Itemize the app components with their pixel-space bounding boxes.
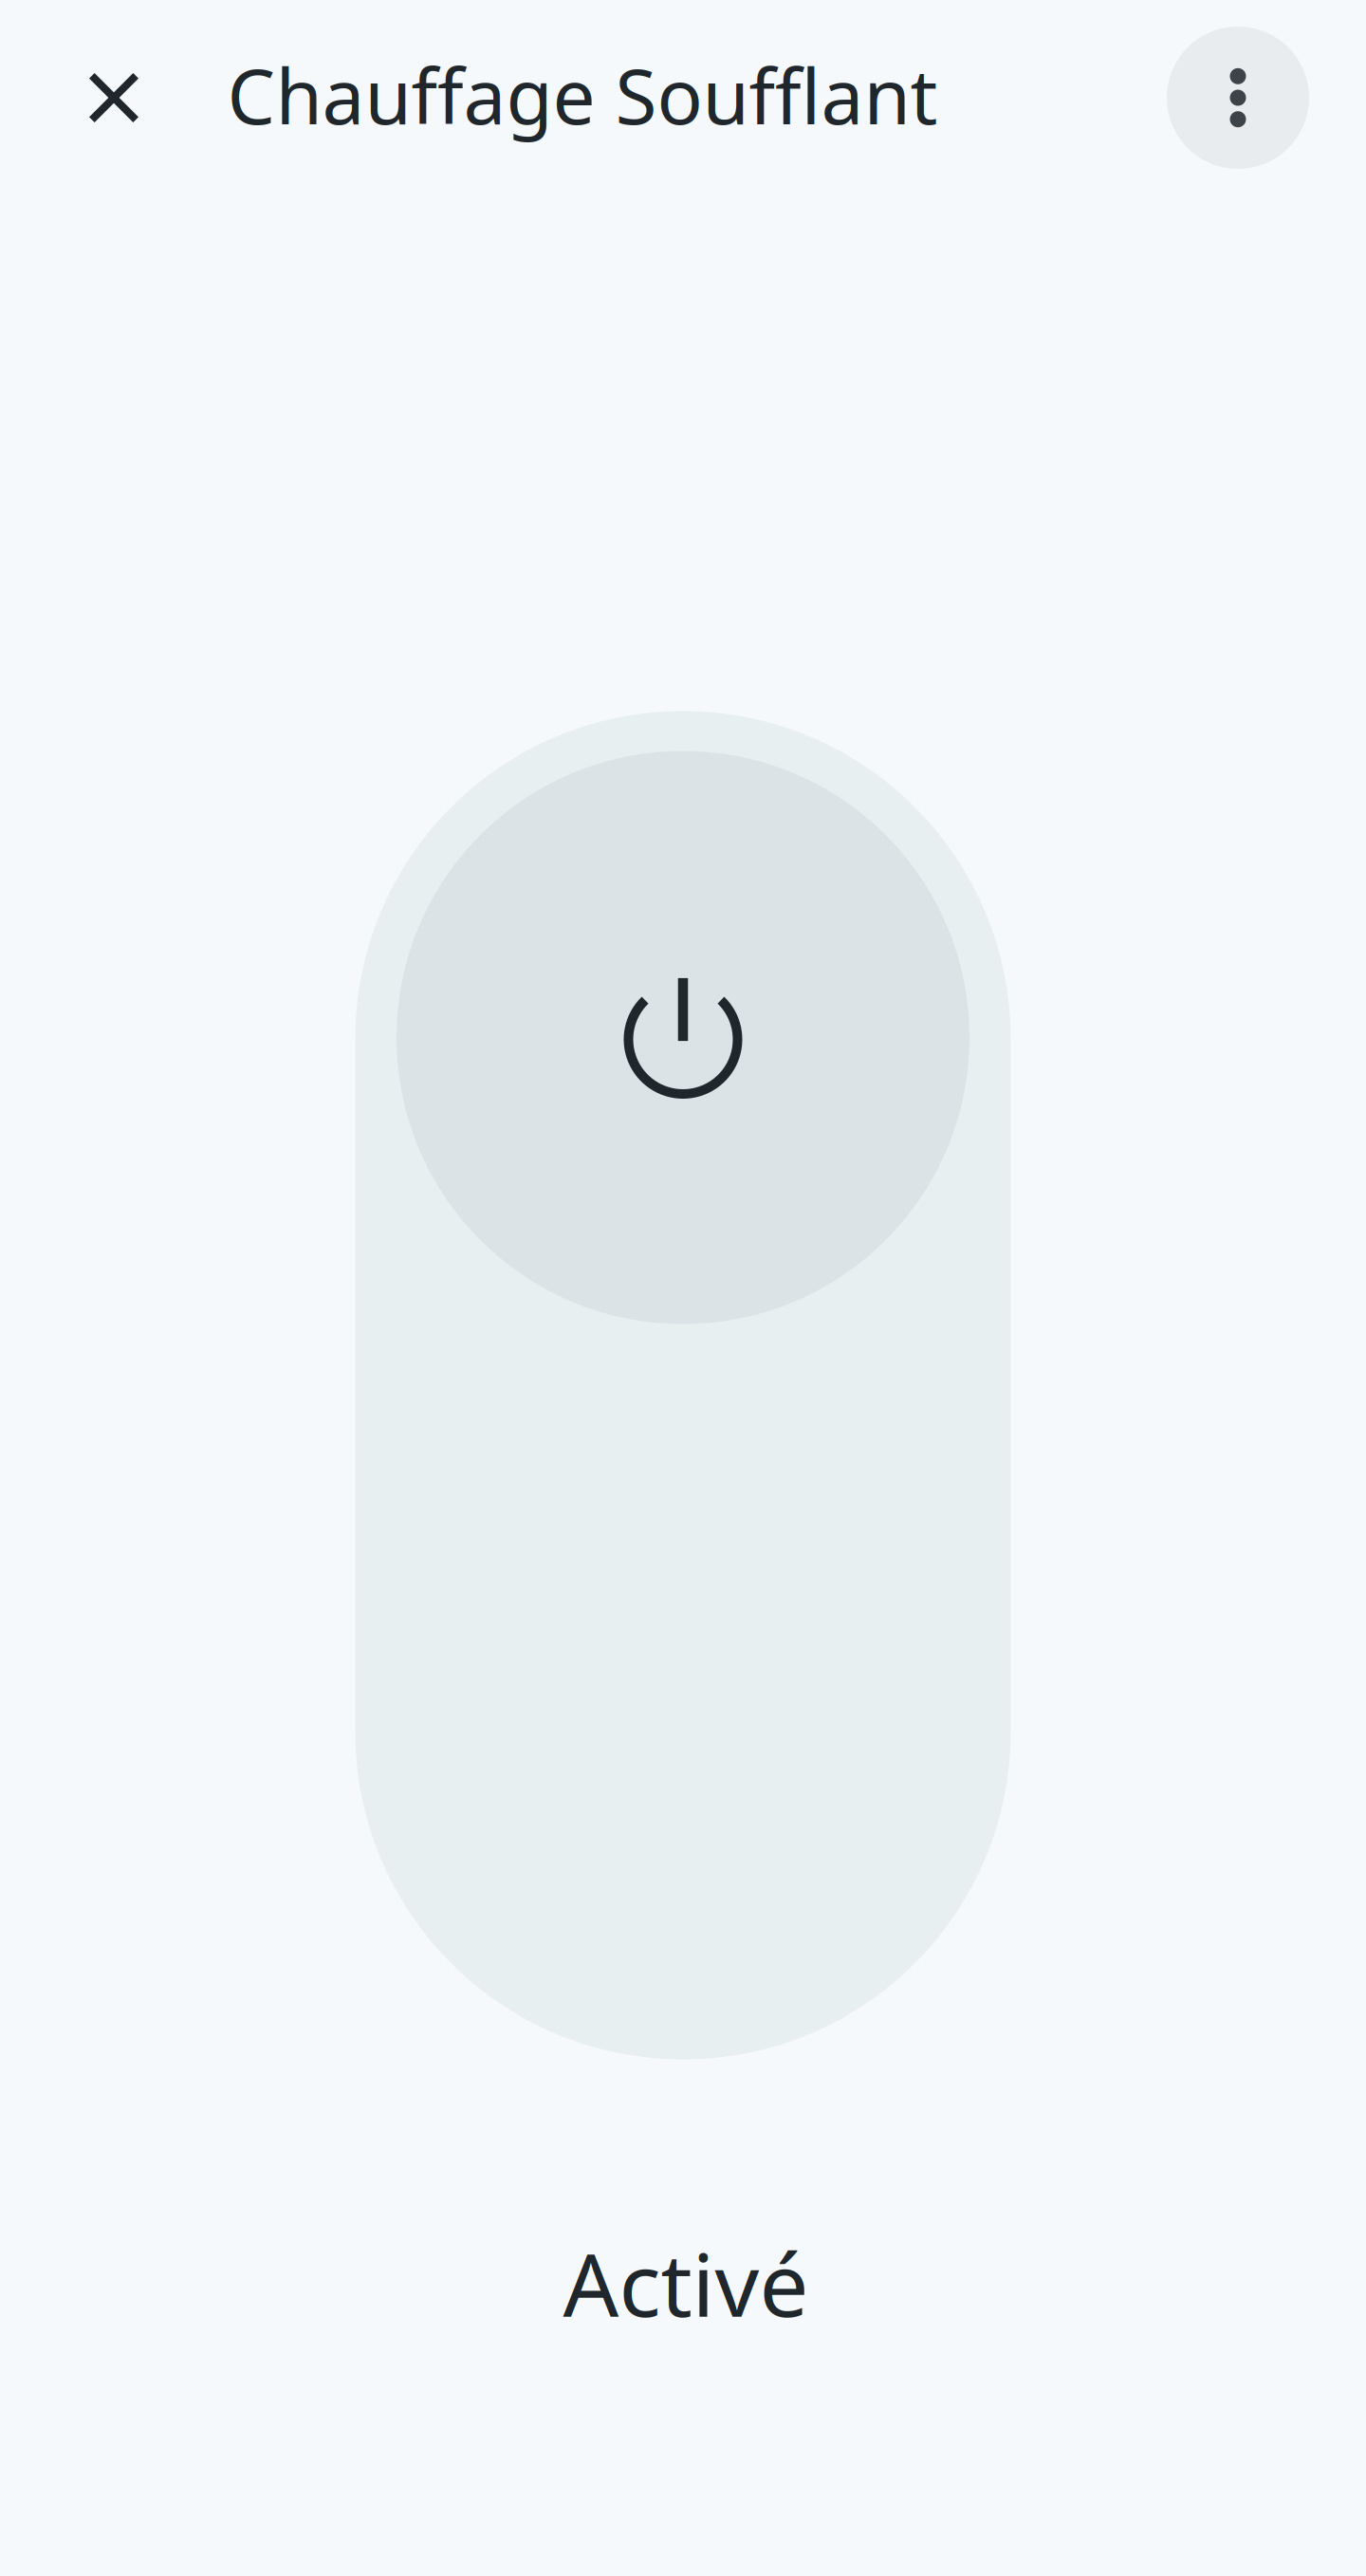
staticText: Chauffage Soufflant — [227, 44, 938, 145]
staticText: Activé — [563, 2225, 809, 2341]
button[interactable]: More options — [1167, 27, 1309, 169]
button[interactable]: Close — [51, 35, 176, 160]
button[interactable]: Power, on — [355, 711, 1011, 2059]
